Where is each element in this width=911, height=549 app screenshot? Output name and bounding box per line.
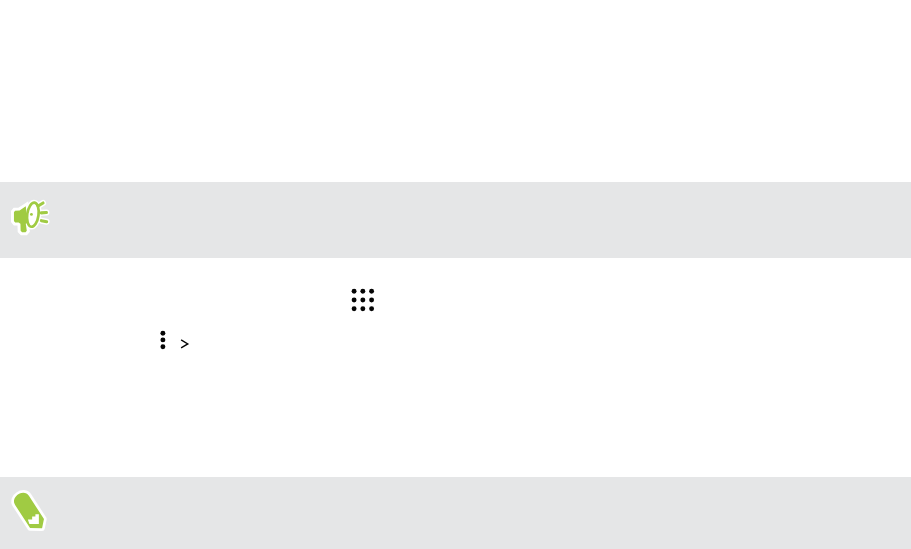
button[interactable]: Announcements xyxy=(12,200,49,237)
button[interactable]: Announcements xyxy=(0,182,911,258)
button[interactable]: Compose xyxy=(0,477,911,549)
button[interactable]: All apps xyxy=(350,287,376,313)
button[interactable]: More options xyxy=(155,327,171,353)
button[interactable]: Compose xyxy=(8,488,50,534)
button[interactable]: Open xyxy=(177,335,191,349)
